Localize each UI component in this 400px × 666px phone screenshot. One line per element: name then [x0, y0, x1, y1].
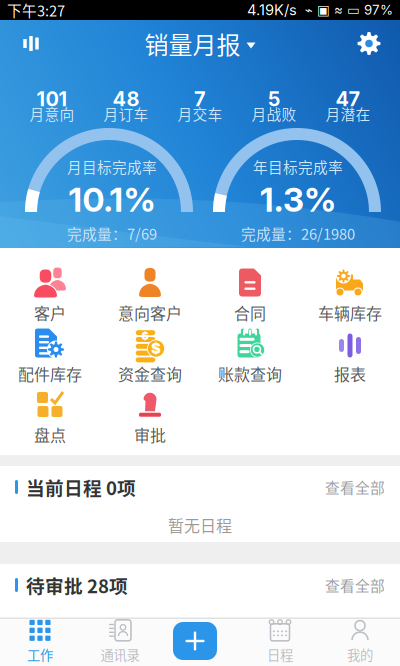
button[interactable]: 意向客户	[100, 263, 200, 324]
button[interactable]: 通讯录	[80, 618, 160, 666]
staticText: 47	[335, 87, 360, 111]
button[interactable]: 新建	[173, 622, 217, 660]
staticText: 暂无日程	[168, 513, 232, 537]
staticText: 10.1%	[68, 179, 155, 220]
staticText: 月战败	[251, 103, 296, 124]
button[interactable]: 盘点	[0, 385, 100, 446]
staticText: 下午3:27	[7, 0, 65, 21]
staticText: 配件库存	[18, 362, 82, 385]
staticText: 意向客户	[118, 301, 182, 324]
staticText: 日程	[267, 645, 293, 664]
staticText: 盘点	[34, 423, 66, 446]
staticText: 查看全部	[325, 476, 385, 498]
staticText: 资金查询	[118, 362, 182, 385]
staticText: 当前日程 0项	[26, 473, 136, 500]
staticText: 年目标完成率	[253, 156, 343, 177]
staticText: 48	[112, 87, 139, 111]
staticText: 月订车	[103, 103, 148, 124]
staticText: 月意向	[29, 103, 74, 124]
button[interactable]: 合同	[200, 263, 300, 324]
staticText: 待审批 28项	[26, 571, 128, 598]
staticText: 完成量：26/1980	[241, 223, 355, 244]
staticText: 月交车	[177, 103, 222, 124]
staticText: 1.3%	[260, 179, 336, 220]
staticText: $	[151, 340, 161, 357]
staticText: 合同	[234, 301, 266, 324]
button[interactable]: 日程	[240, 618, 320, 666]
button[interactable]: 查看全部	[325, 476, 385, 498]
staticText: 查看全部	[325, 574, 385, 596]
button[interactable]: 客户	[0, 263, 100, 324]
button[interactable]: 车辆库存	[300, 263, 400, 324]
staticText: ⌁ ▣ ≈ ▭ 97%	[297, 2, 393, 18]
button[interactable]: 配件库存	[0, 324, 100, 385]
staticText: 7	[194, 87, 206, 111]
button[interactable]: 图表	[8, 20, 54, 66]
staticText: 审批	[134, 423, 166, 446]
button[interactable]: 工作	[0, 618, 80, 666]
staticText: 完成量：7/69	[67, 223, 157, 244]
staticText: 报表	[334, 362, 366, 385]
staticText: 账款查询	[218, 362, 282, 385]
button[interactable]: 销量月报	[144, 20, 255, 66]
button[interactable]: 审批	[100, 385, 200, 446]
staticText: 客户	[34, 301, 66, 324]
button[interactable]: $	[100, 324, 200, 385]
staticText: $	[141, 329, 148, 342]
staticText: 我的	[347, 645, 373, 664]
staticText: 月目标完成率	[67, 156, 157, 177]
staticText: 销量月报	[144, 26, 240, 61]
staticText: 工作	[27, 645, 53, 664]
staticText: 101	[36, 87, 67, 111]
button[interactable]: 查看全部	[325, 574, 385, 596]
staticText: 车辆库存	[318, 301, 382, 324]
button[interactable]: 账款查询	[200, 324, 300, 385]
button[interactable]: 设置	[346, 20, 392, 66]
button[interactable]: 我的	[320, 618, 400, 666]
staticText: 通讯录	[100, 645, 139, 664]
button[interactable]: 报表	[300, 324, 400, 385]
staticText: 月潜在	[325, 103, 370, 124]
staticText: 4.19K/s	[247, 1, 297, 19]
staticText: 5	[268, 87, 280, 111]
